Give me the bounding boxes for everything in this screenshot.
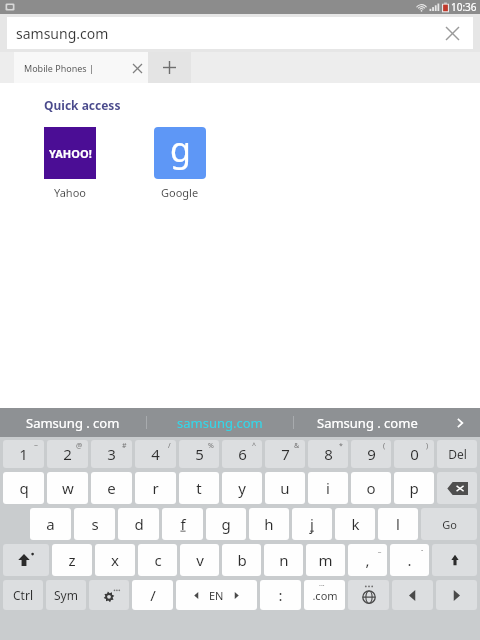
staticText: u	[280, 478, 290, 498]
button[interactable]: u	[265, 472, 305, 504]
staticText: 9	[367, 444, 376, 464]
button[interactable]: x	[95, 544, 135, 576]
staticText: 5	[195, 444, 204, 464]
staticText: r	[152, 478, 159, 498]
button[interactable]: Move right	[436, 580, 477, 610]
button[interactable]: Mobile Phones | Televi…	[14, 52, 148, 83]
button[interactable]: v	[180, 544, 219, 576]
staticText: y	[238, 478, 246, 498]
staticText: ,	[365, 550, 370, 570]
button[interactable]: 2	[47, 440, 88, 468]
button[interactable]: r	[135, 472, 176, 504]
button[interactable]: l	[378, 508, 418, 540]
button[interactable]: Clear	[439, 20, 465, 46]
button[interactable]: 9	[351, 440, 391, 468]
staticText: .	[407, 550, 412, 570]
button[interactable]: s	[74, 508, 115, 540]
staticText: Del	[448, 446, 467, 462]
button[interactable]: Internet	[348, 580, 389, 610]
button[interactable]: w	[47, 472, 88, 504]
button[interactable]: 4	[135, 440, 176, 468]
staticText: &	[294, 441, 300, 451]
staticText: i	[326, 478, 330, 498]
button[interactable]: q	[3, 472, 44, 504]
button[interactable]: samsung.com	[7, 17, 473, 49]
button[interactable]: n	[264, 544, 303, 576]
staticText: ^	[252, 441, 257, 451]
staticText: x	[111, 550, 119, 570]
staticText: ···	[319, 581, 325, 591]
button[interactable]: g	[206, 508, 246, 540]
button[interactable]: Close tab	[126, 57, 148, 79]
button[interactable]: t	[179, 472, 219, 504]
button[interactable]: Samsung . come	[294, 408, 440, 437]
staticText: q	[19, 478, 29, 498]
button[interactable]: f	[162, 508, 203, 540]
button[interactable]: Samsung . com	[0, 408, 146, 437]
button[interactable]: Shift	[3, 544, 49, 576]
button[interactable]: Keyboard settings	[89, 580, 129, 610]
button[interactable]: 3	[91, 440, 132, 468]
button[interactable]: Sym	[46, 580, 86, 610]
staticText: 6	[238, 444, 247, 464]
button[interactable]: i	[308, 472, 348, 504]
button[interactable]: k	[335, 508, 375, 540]
staticText: )	[426, 441, 429, 451]
button[interactable]: Shift	[432, 544, 477, 576]
button[interactable]: 5	[179, 440, 219, 468]
button[interactable]: o	[351, 472, 391, 504]
staticText: k	[351, 514, 360, 534]
button[interactable]: a	[30, 508, 71, 540]
staticText: 3	[107, 444, 116, 464]
staticText: p	[409, 478, 419, 498]
button[interactable]: 7	[265, 440, 305, 468]
button[interactable]: :	[260, 580, 301, 610]
staticText: %	[208, 441, 214, 451]
button[interactable]: ,	[348, 544, 387, 576]
button[interactable]: y	[222, 472, 262, 504]
staticText: n	[279, 550, 289, 570]
staticText: e	[107, 478, 116, 498]
button[interactable]: .com	[304, 580, 345, 610]
staticText: 10:36	[451, 0, 477, 14]
button[interactable]: YAHOO!	[44, 127, 96, 200]
button[interactable]: Backspace	[437, 472, 477, 504]
button[interactable]: More suggestions	[440, 408, 480, 437]
button[interactable]: g	[154, 127, 206, 200]
button[interactable]: 1	[3, 440, 44, 468]
button[interactable]: /	[132, 580, 173, 610]
staticText: :	[278, 585, 283, 605]
staticText: /	[168, 441, 171, 451]
button[interactable]: Move left	[392, 580, 433, 610]
button[interactable]: .	[390, 544, 429, 576]
button[interactable]: c	[138, 544, 177, 576]
button[interactable]: Ctrl	[3, 580, 43, 610]
button[interactable]: Change language	[176, 580, 257, 610]
button[interactable]: b	[222, 544, 261, 576]
staticText: @	[76, 441, 83, 451]
button[interactable]: j	[292, 508, 332, 540]
button[interactable]: p	[394, 472, 434, 504]
staticText: b	[237, 550, 247, 570]
staticText: 4	[151, 444, 160, 464]
button[interactable]: Go	[421, 508, 477, 540]
staticText: Yahoo	[54, 185, 86, 200]
button[interactable]: Del	[437, 440, 477, 468]
button[interactable]: New tab	[148, 52, 191, 83]
button[interactable]: z	[52, 544, 92, 576]
button[interactable]: 6	[222, 440, 262, 468]
staticText: Sym	[54, 587, 78, 603]
staticText: Go	[442, 517, 457, 532]
button[interactable]: 0	[394, 440, 434, 468]
button[interactable]: 8	[308, 440, 348, 468]
button[interactable]: e	[91, 472, 132, 504]
staticText: #	[122, 441, 127, 451]
button[interactable]: d	[118, 508, 159, 540]
staticText: 0	[410, 444, 419, 464]
button[interactable]: samsung.com	[147, 408, 293, 437]
button[interactable]: h	[249, 508, 289, 540]
staticText: m	[318, 550, 333, 570]
staticText: Google	[161, 185, 199, 200]
button[interactable]: m	[306, 544, 345, 576]
staticText: 7	[281, 444, 290, 464]
